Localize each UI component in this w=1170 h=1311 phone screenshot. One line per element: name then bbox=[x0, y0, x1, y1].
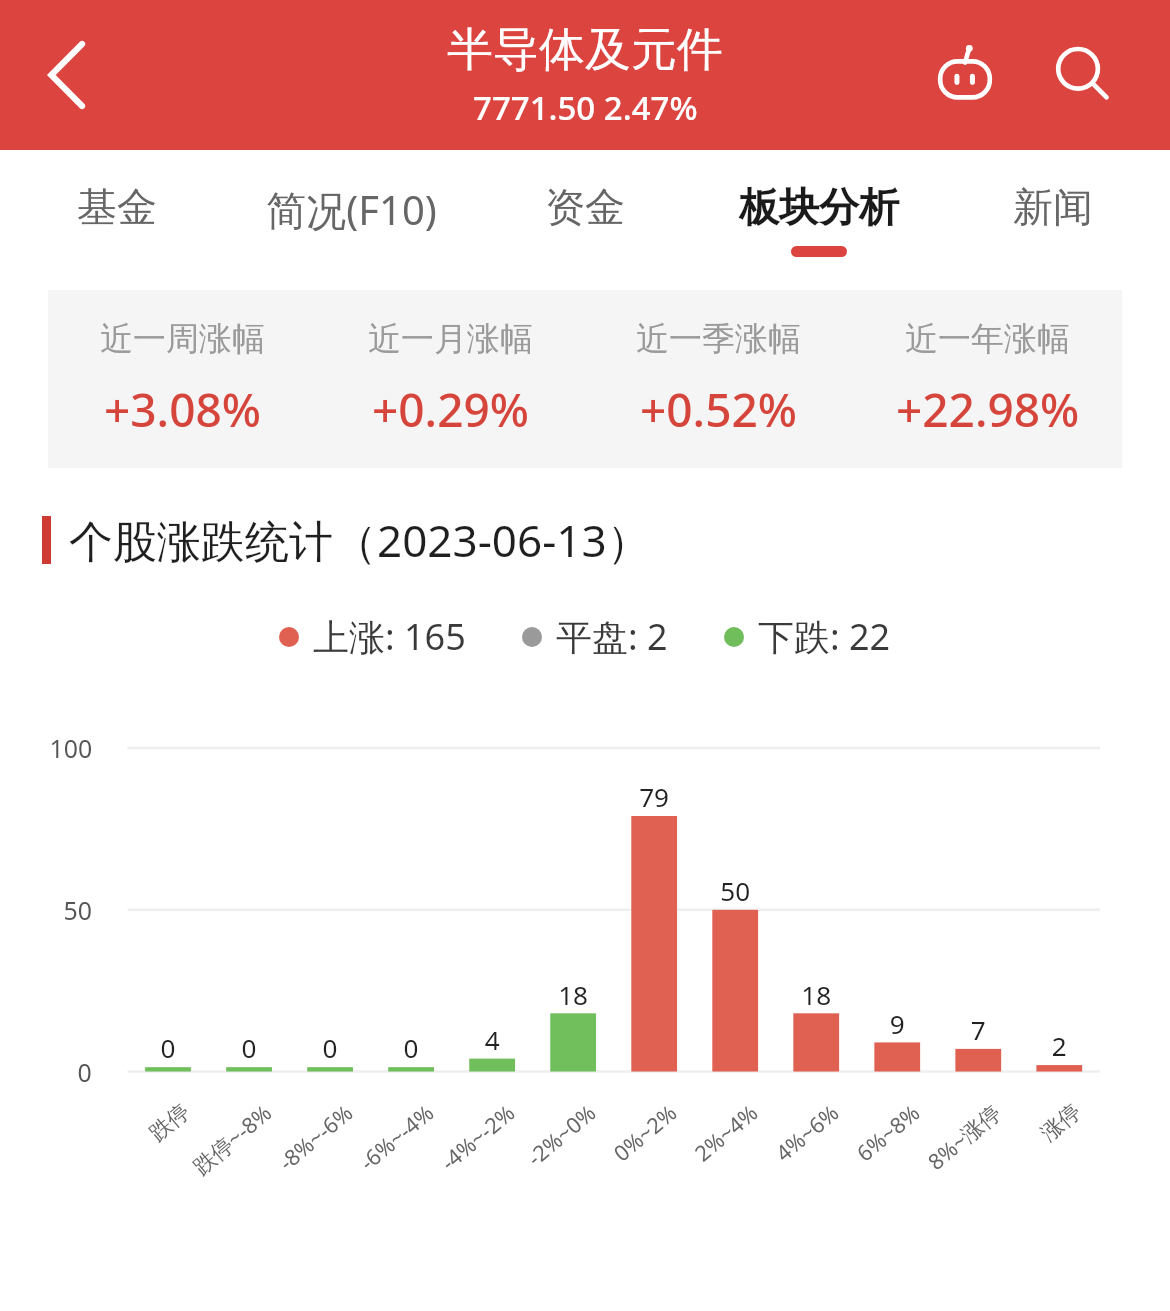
button[interactable]: 近一周涨幅 bbox=[48, 318, 316, 441]
staticText: +22.98% bbox=[896, 378, 1080, 441]
button[interactable]: 近一月涨幅 bbox=[316, 318, 584, 441]
staticText: 近一季涨幅 bbox=[636, 318, 801, 360]
staticText: 简况(F10) bbox=[266, 182, 437, 237]
staticText: 上涨: 165 bbox=[313, 612, 466, 661]
button[interactable]: 资金 bbox=[468, 150, 702, 290]
staticText: 个股涨跌统计（2023-06-13） bbox=[69, 510, 651, 570]
button[interactable]: Search bbox=[1038, 30, 1128, 120]
button[interactable]: 简况(F10) bbox=[234, 150, 468, 290]
staticText: 平盘: 2 bbox=[556, 612, 668, 661]
button[interactable]: AI assistant bbox=[920, 30, 1010, 120]
staticText: 基金 bbox=[77, 182, 157, 232]
button[interactable]: 新闻 bbox=[936, 150, 1170, 290]
button[interactable]: 基金 bbox=[0, 150, 234, 290]
staticText: 新闻 bbox=[1013, 182, 1093, 232]
staticText: 近一年涨幅 bbox=[905, 318, 1070, 360]
staticText: 半导体及元件 bbox=[447, 21, 723, 79]
button[interactable]: 板块分析 bbox=[702, 150, 936, 290]
staticText: 7771.50 2.47% bbox=[473, 85, 698, 130]
staticText: 近一周涨幅 bbox=[100, 318, 265, 360]
staticText: 板块分析 bbox=[739, 182, 899, 232]
staticText: 近一月涨幅 bbox=[368, 318, 533, 360]
staticText: 资金 bbox=[545, 182, 625, 232]
staticText: +0.29% bbox=[372, 378, 529, 441]
staticText: 下跌: 22 bbox=[758, 612, 891, 661]
button[interactable]: 近一季涨幅 bbox=[584, 318, 853, 441]
staticText: +0.52% bbox=[640, 378, 797, 441]
button[interactable]: Back bbox=[18, 20, 118, 130]
button[interactable]: 近一年涨幅 bbox=[853, 318, 1122, 441]
staticText: +3.08% bbox=[104, 378, 261, 441]
